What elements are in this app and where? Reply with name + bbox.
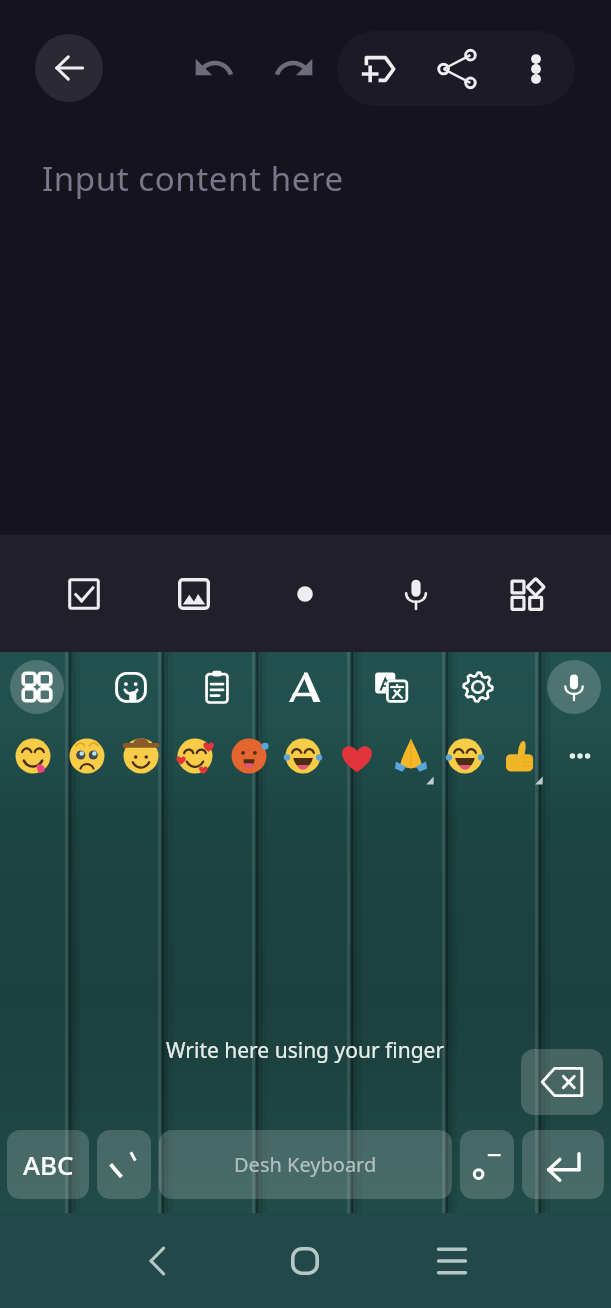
button[interactable]: Back: [118, 1221, 198, 1301]
button[interactable]: Keyboard modes: [0, 652, 81, 722]
button[interactable]: Text style: [260, 652, 348, 722]
button[interactable]: Emoji 7: [384, 722, 438, 790]
button[interactable]: Recent apps: [412, 1221, 492, 1301]
staticText: ABC: [23, 1147, 74, 1182]
button[interactable]: [97, 1130, 151, 1199]
button[interactable]: Record: [249, 535, 360, 652]
button[interactable]: Translate: [347, 652, 435, 722]
staticText: Desh Keyboard: [234, 1151, 377, 1178]
button[interactable]: [460, 1130, 514, 1199]
button[interactable]: Emoji 3: [168, 722, 222, 790]
button[interactable]: Emoji 1: [60, 722, 114, 790]
button[interactable]: Home: [265, 1221, 345, 1301]
button[interactable]: Back: [35, 34, 103, 102]
button[interactable]: Desh Keyboard: [159, 1130, 452, 1199]
button[interactable]: More options: [497, 31, 575, 106]
button[interactable]: Share: [417, 31, 497, 106]
button[interactable]: Settings: [434, 652, 522, 722]
button[interactable]: ABC: [7, 1130, 89, 1199]
button[interactable]: Redo: [264, 38, 324, 98]
button[interactable]: Emoji: [87, 652, 175, 722]
button[interactable]: [522, 1130, 604, 1199]
button[interactable]: Backspace: [521, 1049, 603, 1115]
button[interactable]: Voice typing: [530, 652, 611, 722]
staticText: Input content here: [42, 156, 344, 201]
button[interactable]: Emoji 0: [6, 722, 60, 790]
button[interactable]: Widgets: [471, 535, 582, 652]
button[interactable]: Emoji 6: [330, 722, 384, 790]
button[interactable]: Undo: [184, 38, 244, 98]
button[interactable]: Clipboard: [173, 652, 261, 722]
button[interactable]: More emoji: [553, 722, 607, 790]
staticText: Write here using your finger: [166, 1036, 445, 1065]
button[interactable]: Emoji 2: [114, 722, 168, 790]
button[interactable]: Checklist: [29, 535, 139, 652]
button[interactable]: Add tag: [337, 31, 417, 106]
button[interactable]: Emoji 9: [493, 722, 547, 790]
button[interactable]: Emoji 4: [222, 722, 276, 790]
button[interactable]: Emoji 5: [276, 722, 330, 790]
button[interactable]: Insert image: [139, 535, 249, 652]
button[interactable]: Voice input: [360, 535, 471, 652]
button[interactable]: Emoji 8: [438, 722, 492, 790]
